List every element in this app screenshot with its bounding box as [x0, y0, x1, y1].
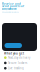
staticText: Live tracking	[8, 66, 24, 70]
staticText: Pick-up points close to you	[2, 11, 19, 13]
staticText: Receive and	[2, 2, 21, 6]
staticText: anywhere	[2, 7, 17, 11]
button[interactable]	[4, 43, 22, 48]
staticText: send parcels at	[2, 5, 24, 8]
staticText: Next-day delivery	[8, 56, 30, 59]
staticText: What you get	[4, 52, 24, 55]
staticText: Secure lockers	[8, 61, 27, 65]
